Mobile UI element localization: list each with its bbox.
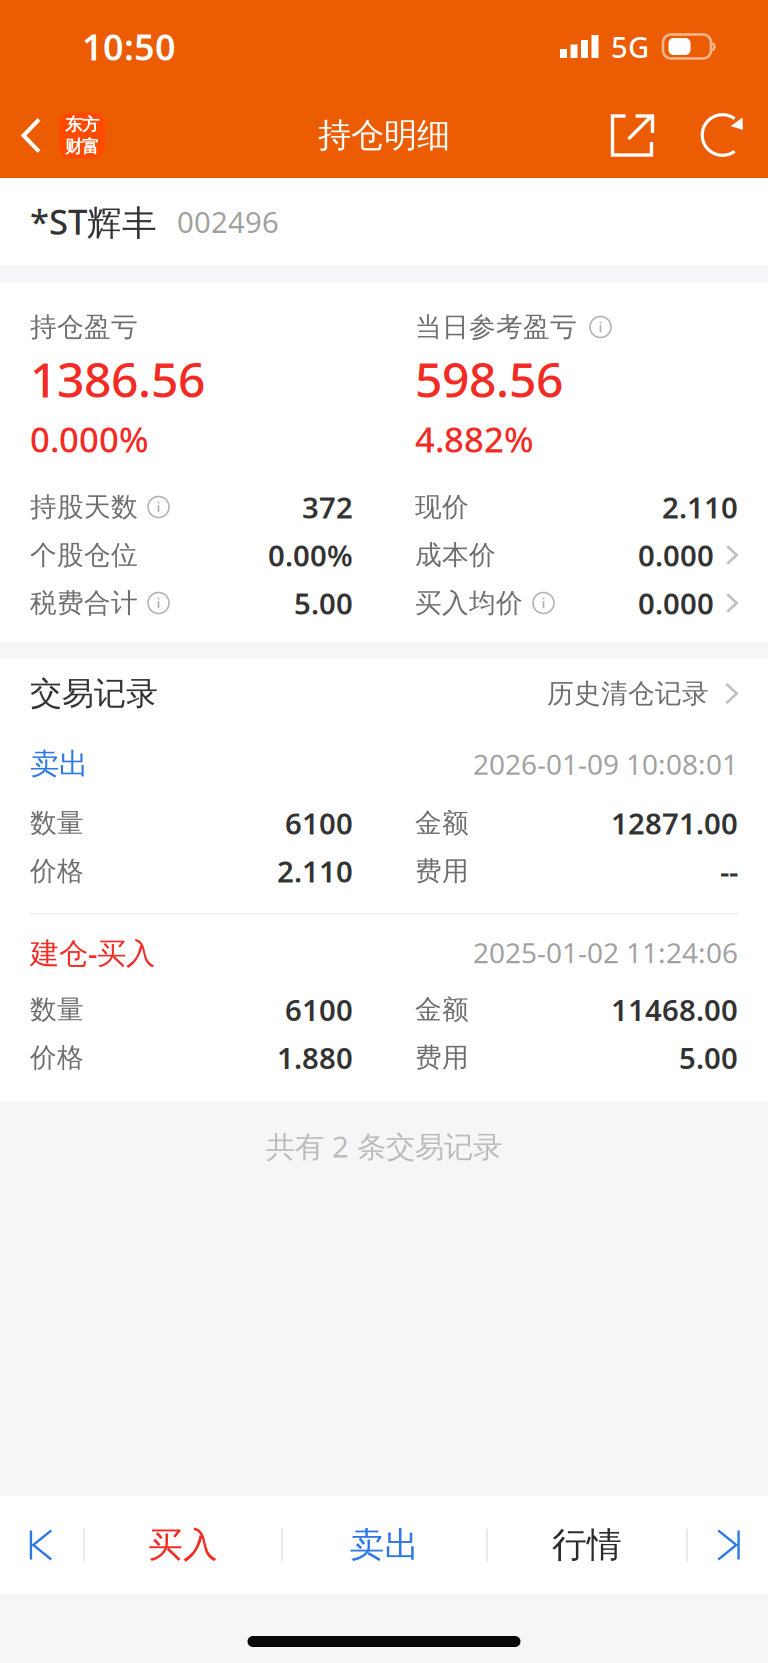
staticText: 财富 xyxy=(65,136,99,157)
staticText: 598.56 xyxy=(415,347,563,411)
staticText: 价格 xyxy=(30,1041,84,1074)
staticText: 现价 xyxy=(415,491,469,523)
staticText: 4.882% xyxy=(415,416,534,462)
staticText: 卖出 xyxy=(349,1524,419,1566)
button[interactable]: Share xyxy=(573,93,691,178)
staticText: 历史清仓记录 xyxy=(547,677,709,710)
button[interactable]: 买入 xyxy=(85,1496,281,1594)
staticText: 1.880 xyxy=(277,1038,353,1077)
staticText: 持仓盈亏 xyxy=(30,311,138,343)
staticText: 数量 xyxy=(30,993,84,1026)
staticText: 5G xyxy=(611,27,649,66)
staticText: 东方 xyxy=(65,114,99,135)
staticText: 002496 xyxy=(177,202,279,241)
staticText: 交易记录 xyxy=(30,674,158,713)
staticText: *ST辉丰 xyxy=(30,198,157,245)
staticText: 0.000 xyxy=(638,535,714,574)
button[interactable]: Next stock xyxy=(688,1496,768,1594)
staticText: 个股仓位 xyxy=(30,539,138,571)
staticText: 数量 xyxy=(30,807,84,839)
button[interactable]: 卖出 xyxy=(283,1496,486,1594)
staticText: 0.00% xyxy=(268,535,353,574)
staticText: 12871.00 xyxy=(611,803,738,842)
staticText: 建仓-买入 xyxy=(30,933,155,972)
button[interactable]: 东方 xyxy=(0,93,119,178)
staticText: 共有 2 条交易记录 xyxy=(266,1126,502,1165)
staticText: 0.000% xyxy=(30,416,149,462)
button[interactable]: 行情 xyxy=(488,1496,686,1594)
staticText: 10:50 xyxy=(82,23,176,70)
staticText: 买入均价 xyxy=(415,587,523,619)
staticText: 费用 xyxy=(415,1041,469,1074)
staticText: 行情 xyxy=(552,1524,622,1566)
staticText: 0.000 xyxy=(638,583,714,622)
staticText: 价格 xyxy=(30,855,84,887)
staticText: 6100 xyxy=(285,990,353,1029)
staticText: 费用 xyxy=(415,855,469,887)
staticText: 买入 xyxy=(148,1524,218,1566)
staticText: 2025-01-02 11:24:06 xyxy=(473,934,738,971)
staticText: 持股天数 xyxy=(30,491,138,523)
staticText: 11468.00 xyxy=(611,990,738,1029)
button[interactable]: Previous stock xyxy=(0,1496,83,1594)
staticText: 1386.56 xyxy=(30,347,205,411)
staticText: 金额 xyxy=(415,807,469,839)
staticText: 372 xyxy=(302,487,353,526)
staticText: 成本价 xyxy=(415,539,496,571)
button[interactable]: Refresh xyxy=(691,93,755,178)
staticText: 卖出 xyxy=(30,746,88,782)
staticText: 当日参考盈亏 xyxy=(415,311,577,343)
staticText: 5.00 xyxy=(294,583,353,622)
button[interactable]: 历史清仓记录 xyxy=(547,658,738,729)
staticText: 2026-01-09 10:08:01 xyxy=(473,745,738,783)
staticText: 持仓明细 xyxy=(318,115,450,156)
staticText: 5.00 xyxy=(679,1038,738,1077)
staticText: 6100 xyxy=(285,803,353,842)
staticText: 2.110 xyxy=(662,487,738,526)
staticText: 2.110 xyxy=(277,851,353,890)
staticText: 金额 xyxy=(415,993,469,1026)
staticText: 税费合计 xyxy=(30,587,138,619)
staticText: -- xyxy=(720,851,738,890)
